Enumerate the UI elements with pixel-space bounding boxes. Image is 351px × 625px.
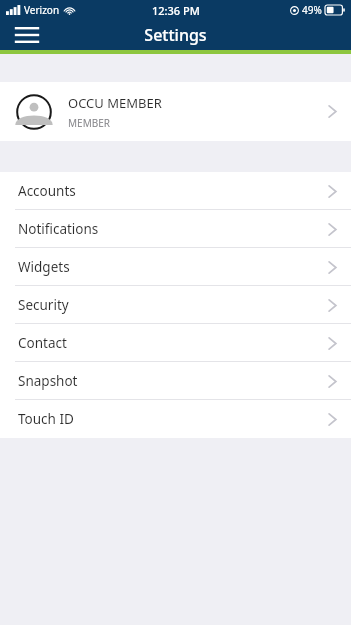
- staticText: Accounts: [18, 182, 328, 200]
- button[interactable]: Accounts: [0, 172, 351, 210]
- staticText: Contact: [18, 334, 328, 352]
- button[interactable]: OCCU MEMBER: [0, 82, 351, 141]
- button[interactable]: Touch ID: [0, 400, 351, 438]
- staticText: MEMBER: [68, 116, 110, 130]
- staticText: Security: [18, 296, 328, 314]
- staticText: 12:36 PM: [152, 3, 200, 18]
- staticText: Verizon: [24, 3, 60, 17]
- staticText: Widgets: [18, 258, 328, 276]
- button[interactable]: Open navigation menu: [12, 20, 42, 49]
- staticText: OCCU MEMBER: [68, 94, 162, 112]
- staticText: 49%: [302, 3, 322, 17]
- staticText: Touch ID: [18, 410, 328, 428]
- button[interactable]: Contact: [0, 324, 351, 362]
- staticText: Snapshot: [18, 372, 328, 390]
- button[interactable]: Security: [0, 286, 351, 324]
- staticText: Settings: [0, 24, 351, 46]
- button[interactable]: Notifications: [0, 210, 351, 248]
- staticText: Notifications: [18, 220, 328, 238]
- button[interactable]: Snapshot: [0, 362, 351, 400]
- button[interactable]: Widgets: [0, 248, 351, 286]
